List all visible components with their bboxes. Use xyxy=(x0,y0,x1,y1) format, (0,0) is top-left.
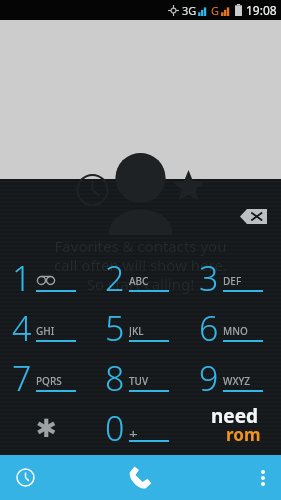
button[interactable]: 3 xyxy=(187,253,281,303)
button[interactable]: 0 xyxy=(93,403,187,453)
staticText: 9 xyxy=(199,355,219,401)
button[interactable]: 8 xyxy=(93,353,187,403)
staticText: 0 xyxy=(105,405,125,451)
button[interactable]: Recent calls xyxy=(0,455,93,500)
button[interactable]: need xyxy=(187,403,281,453)
staticText: 5 xyxy=(105,305,125,351)
staticText: JKL xyxy=(129,324,144,337)
button[interactable]: 7 xyxy=(0,353,93,403)
staticText: 4 xyxy=(12,305,32,351)
staticText: need xyxy=(211,403,259,429)
staticText: 3 xyxy=(199,255,219,301)
staticText: 7 xyxy=(12,355,32,401)
staticText: Favorites & contacts you call often will… xyxy=(0,236,281,294)
button[interactable]: 6 xyxy=(187,303,281,353)
staticText: PQRS xyxy=(36,374,62,387)
button[interactable]: Call xyxy=(93,455,187,500)
button[interactable]: ✱ xyxy=(0,403,93,453)
staticText: DEF xyxy=(223,274,242,287)
staticText: 2 xyxy=(105,255,125,301)
button[interactable]: 5 xyxy=(93,303,187,353)
button[interactable]: 9 xyxy=(187,353,281,403)
staticText: 1 xyxy=(12,255,32,301)
button[interactable]: Delete xyxy=(233,203,273,229)
button[interactable]: 2 xyxy=(93,253,187,303)
staticText: 3G xyxy=(182,3,197,18)
staticText: + xyxy=(129,424,138,437)
staticText: 8 xyxy=(105,355,125,401)
staticText: rom xyxy=(226,423,261,446)
staticText: 19:08 xyxy=(246,2,277,18)
staticText: ✱ xyxy=(36,414,57,443)
staticText: ABC xyxy=(129,274,149,287)
staticText: MNO xyxy=(223,324,248,337)
staticText: G xyxy=(211,3,220,18)
staticText: WXYZ xyxy=(223,374,251,387)
staticText: 6 xyxy=(199,305,219,351)
staticText: TUV xyxy=(129,374,149,387)
staticText: GHI xyxy=(36,324,55,337)
button[interactable]: 4 xyxy=(0,303,93,353)
button[interactable]: 1 xyxy=(0,253,93,303)
button[interactable]: More options xyxy=(187,455,281,500)
